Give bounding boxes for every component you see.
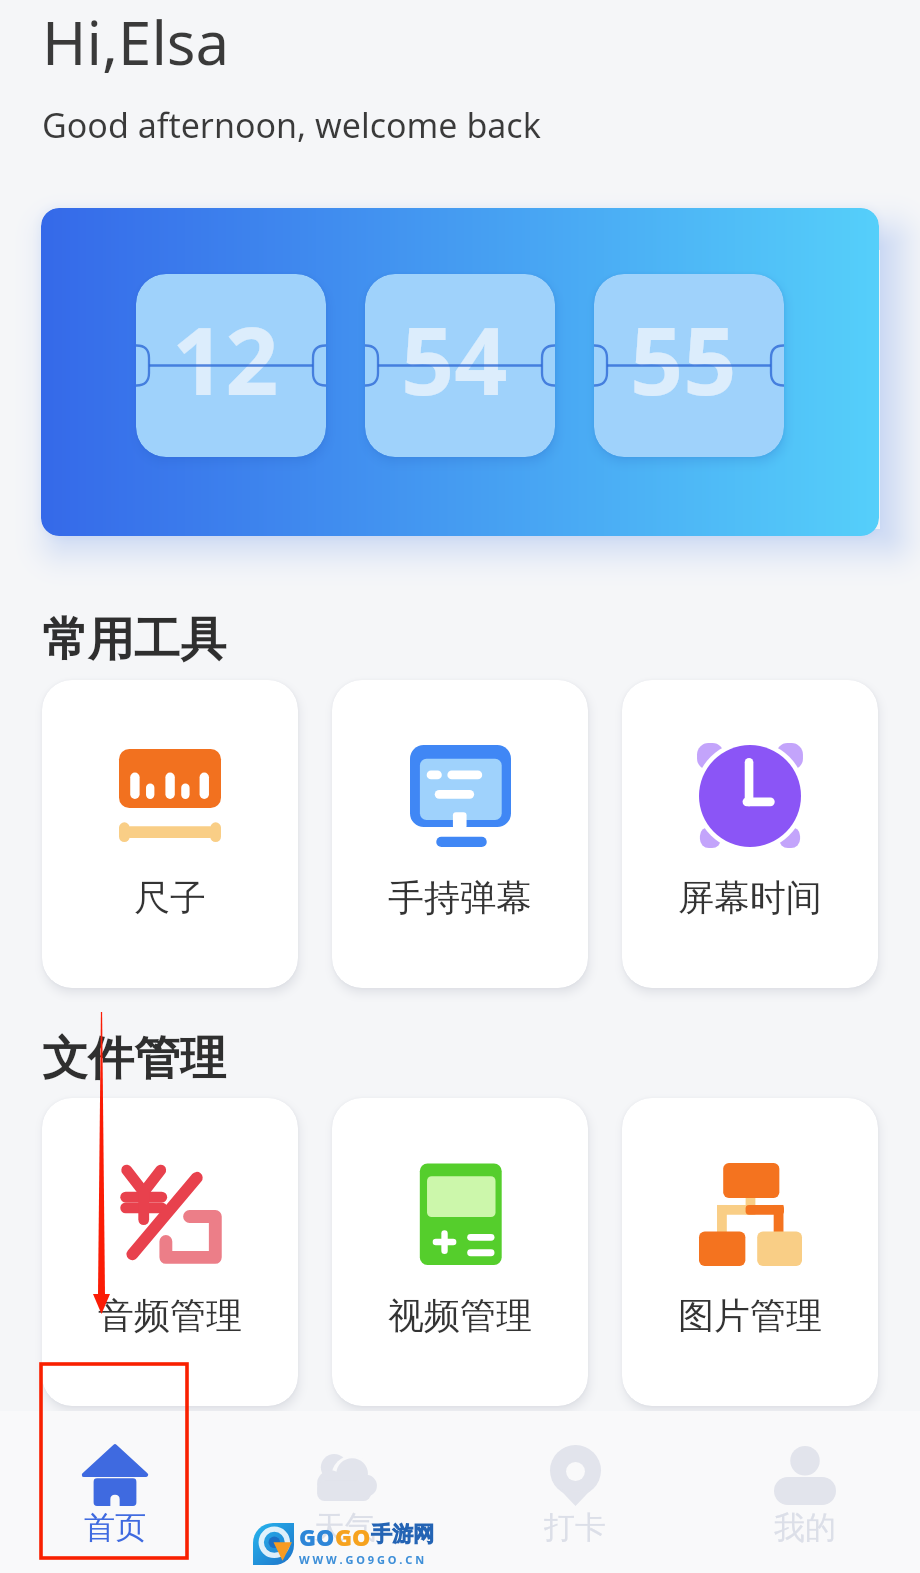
button[interactable]: Home: [0, 1411, 230, 1573]
staticText: 55: [630, 296, 737, 423]
button[interactable]: 屏幕时间: [622, 680, 878, 988]
staticText: 尺子: [134, 875, 206, 920]
staticText: 我的: [774, 1508, 836, 1547]
button[interactable]: Check in: [460, 1411, 690, 1573]
button[interactable]: 音频管理: [42, 1098, 298, 1406]
staticText: 常用工具: [42, 611, 226, 669]
staticText: 图片管理: [678, 1293, 822, 1338]
button[interactable]: Profile: [690, 1411, 920, 1573]
staticText: 文件管理: [42, 1030, 226, 1088]
staticText: 首页: [84, 1508, 146, 1547]
button[interactable]: 图片管理: [622, 1098, 878, 1406]
staticText: 打卡: [544, 1508, 606, 1547]
staticText: Good afternoon, welcome back: [42, 102, 541, 148]
button[interactable]: 12: [41, 208, 879, 536]
staticText: Hi,Elsa: [42, 1, 230, 83]
staticText: 音频管理: [98, 1293, 242, 1338]
staticText: 手游网: [371, 1521, 434, 1547]
staticText: GO: [335, 1521, 371, 1552]
button[interactable]: 尺子: [42, 680, 298, 988]
staticText: 12: [172, 296, 279, 423]
staticText: 54: [401, 296, 508, 423]
staticText: 屏幕时间: [678, 875, 822, 920]
staticText: GO: [299, 1521, 335, 1552]
button[interactable]: Weather: [230, 1411, 460, 1573]
button[interactable]: 手持弹幕: [332, 680, 588, 988]
staticText: 手持弹幕: [388, 875, 532, 920]
staticText: 视频管理: [388, 1293, 532, 1338]
staticText: 天气: [314, 1508, 376, 1547]
button[interactable]: 视频管理: [332, 1098, 588, 1406]
staticText: W W W . G O 9 G O . C N: [299, 1552, 425, 1567]
